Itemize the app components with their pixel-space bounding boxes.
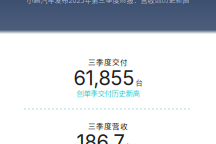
staticText: 186.7 — [76, 130, 124, 144]
staticText: 61,855 — [73, 66, 134, 90]
staticText: 亿元 — [125, 141, 139, 144]
staticText: 三季度营收 — [88, 120, 128, 131]
staticText: 三季度交付 — [88, 56, 128, 67]
staticText: 台 — [135, 77, 142, 88]
staticText: 创单季交付历史新高 — [76, 88, 139, 98]
staticText: 小鹏汽车发布2025年第三季度财报：营收创历史新高 — [26, 0, 189, 5]
